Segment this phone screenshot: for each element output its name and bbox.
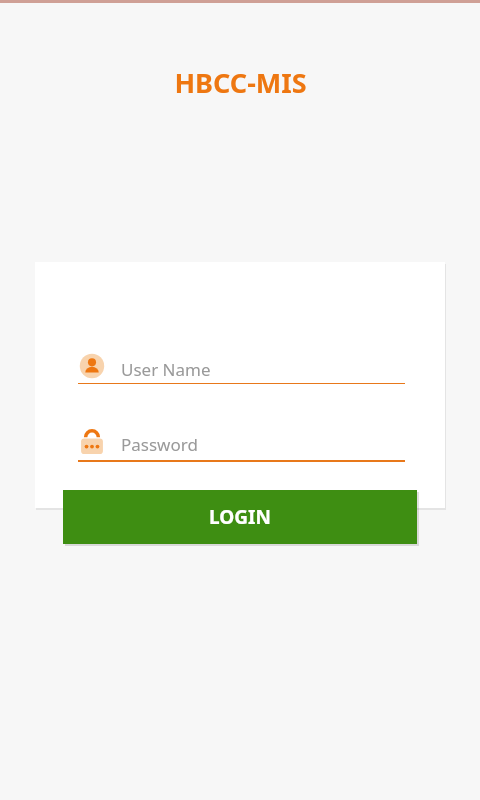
button[interactable]: LOGIN bbox=[63, 490, 417, 544]
staticText: HBCC-MIS bbox=[174, 64, 307, 101]
staticText: Password bbox=[121, 433, 198, 456]
staticText: User Name bbox=[121, 358, 211, 381]
staticText: LOGIN bbox=[209, 504, 271, 530]
